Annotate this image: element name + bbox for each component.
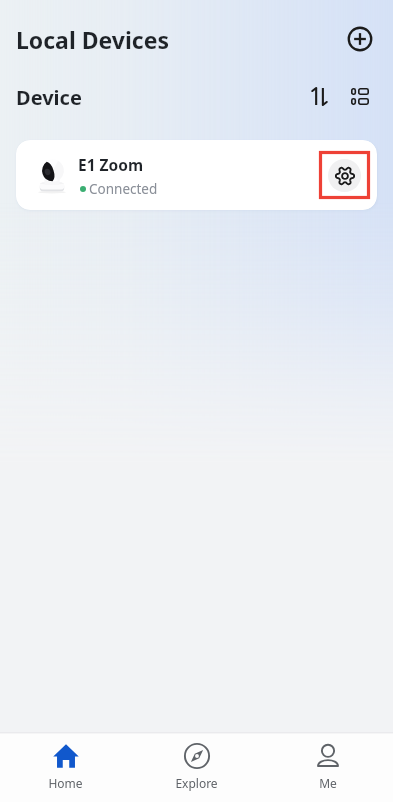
button[interactable]: Device settings xyxy=(319,151,370,199)
staticText: E1 Zoom xyxy=(78,154,144,175)
button[interactable]: Me xyxy=(262,736,393,801)
staticText: Local Devices xyxy=(16,24,169,55)
button[interactable]: E1 Zoom xyxy=(16,140,377,210)
staticText: Device xyxy=(16,84,82,111)
button[interactable]: Change layout xyxy=(345,81,375,111)
button[interactable]: Home xyxy=(0,736,131,801)
staticText: Home xyxy=(48,775,83,791)
staticText: Connected xyxy=(89,180,158,198)
staticText: Me xyxy=(319,775,337,791)
button[interactable]: Add device xyxy=(343,22,377,56)
staticText: Explore xyxy=(175,775,218,791)
button[interactable]: Sort xyxy=(305,81,335,111)
button[interactable]: Explore xyxy=(131,736,262,801)
